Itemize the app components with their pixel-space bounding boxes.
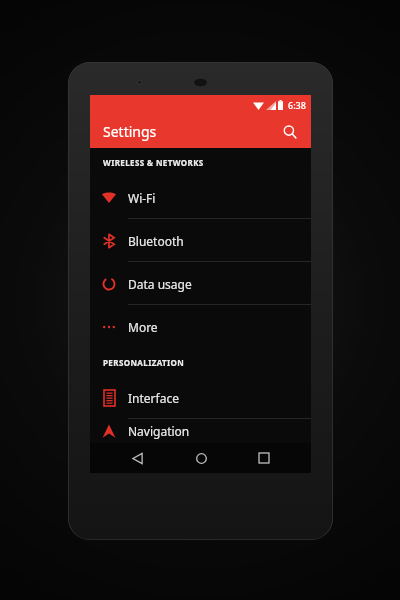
button[interactable]: Back [120, 443, 154, 473]
staticText: WIRELESS & NETWORKS [103, 157, 204, 168]
staticText: Navigation [128, 423, 190, 439]
button[interactable]: Wi-Fi [90, 176, 311, 219]
staticText: Interface [128, 390, 179, 406]
staticText: Settings [103, 122, 157, 141]
staticText: Data usage [128, 276, 192, 292]
staticText: 6:38 [288, 99, 306, 111]
staticText: PERSONALIZATION [103, 357, 185, 368]
button[interactable]: Recent apps [247, 443, 281, 473]
button[interactable]: Navigation [90, 419, 311, 443]
staticText: Wi-Fi [128, 190, 156, 206]
button[interactable]: Data usage [90, 262, 311, 305]
button[interactable]: Search [277, 119, 303, 145]
staticText: Bluetooth [128, 233, 184, 249]
staticText: More [128, 319, 158, 335]
button[interactable]: Home [184, 443, 218, 473]
button[interactable]: More [90, 305, 311, 348]
button[interactable]: Interface [90, 376, 311, 419]
button[interactable]: Bluetooth [90, 219, 311, 262]
